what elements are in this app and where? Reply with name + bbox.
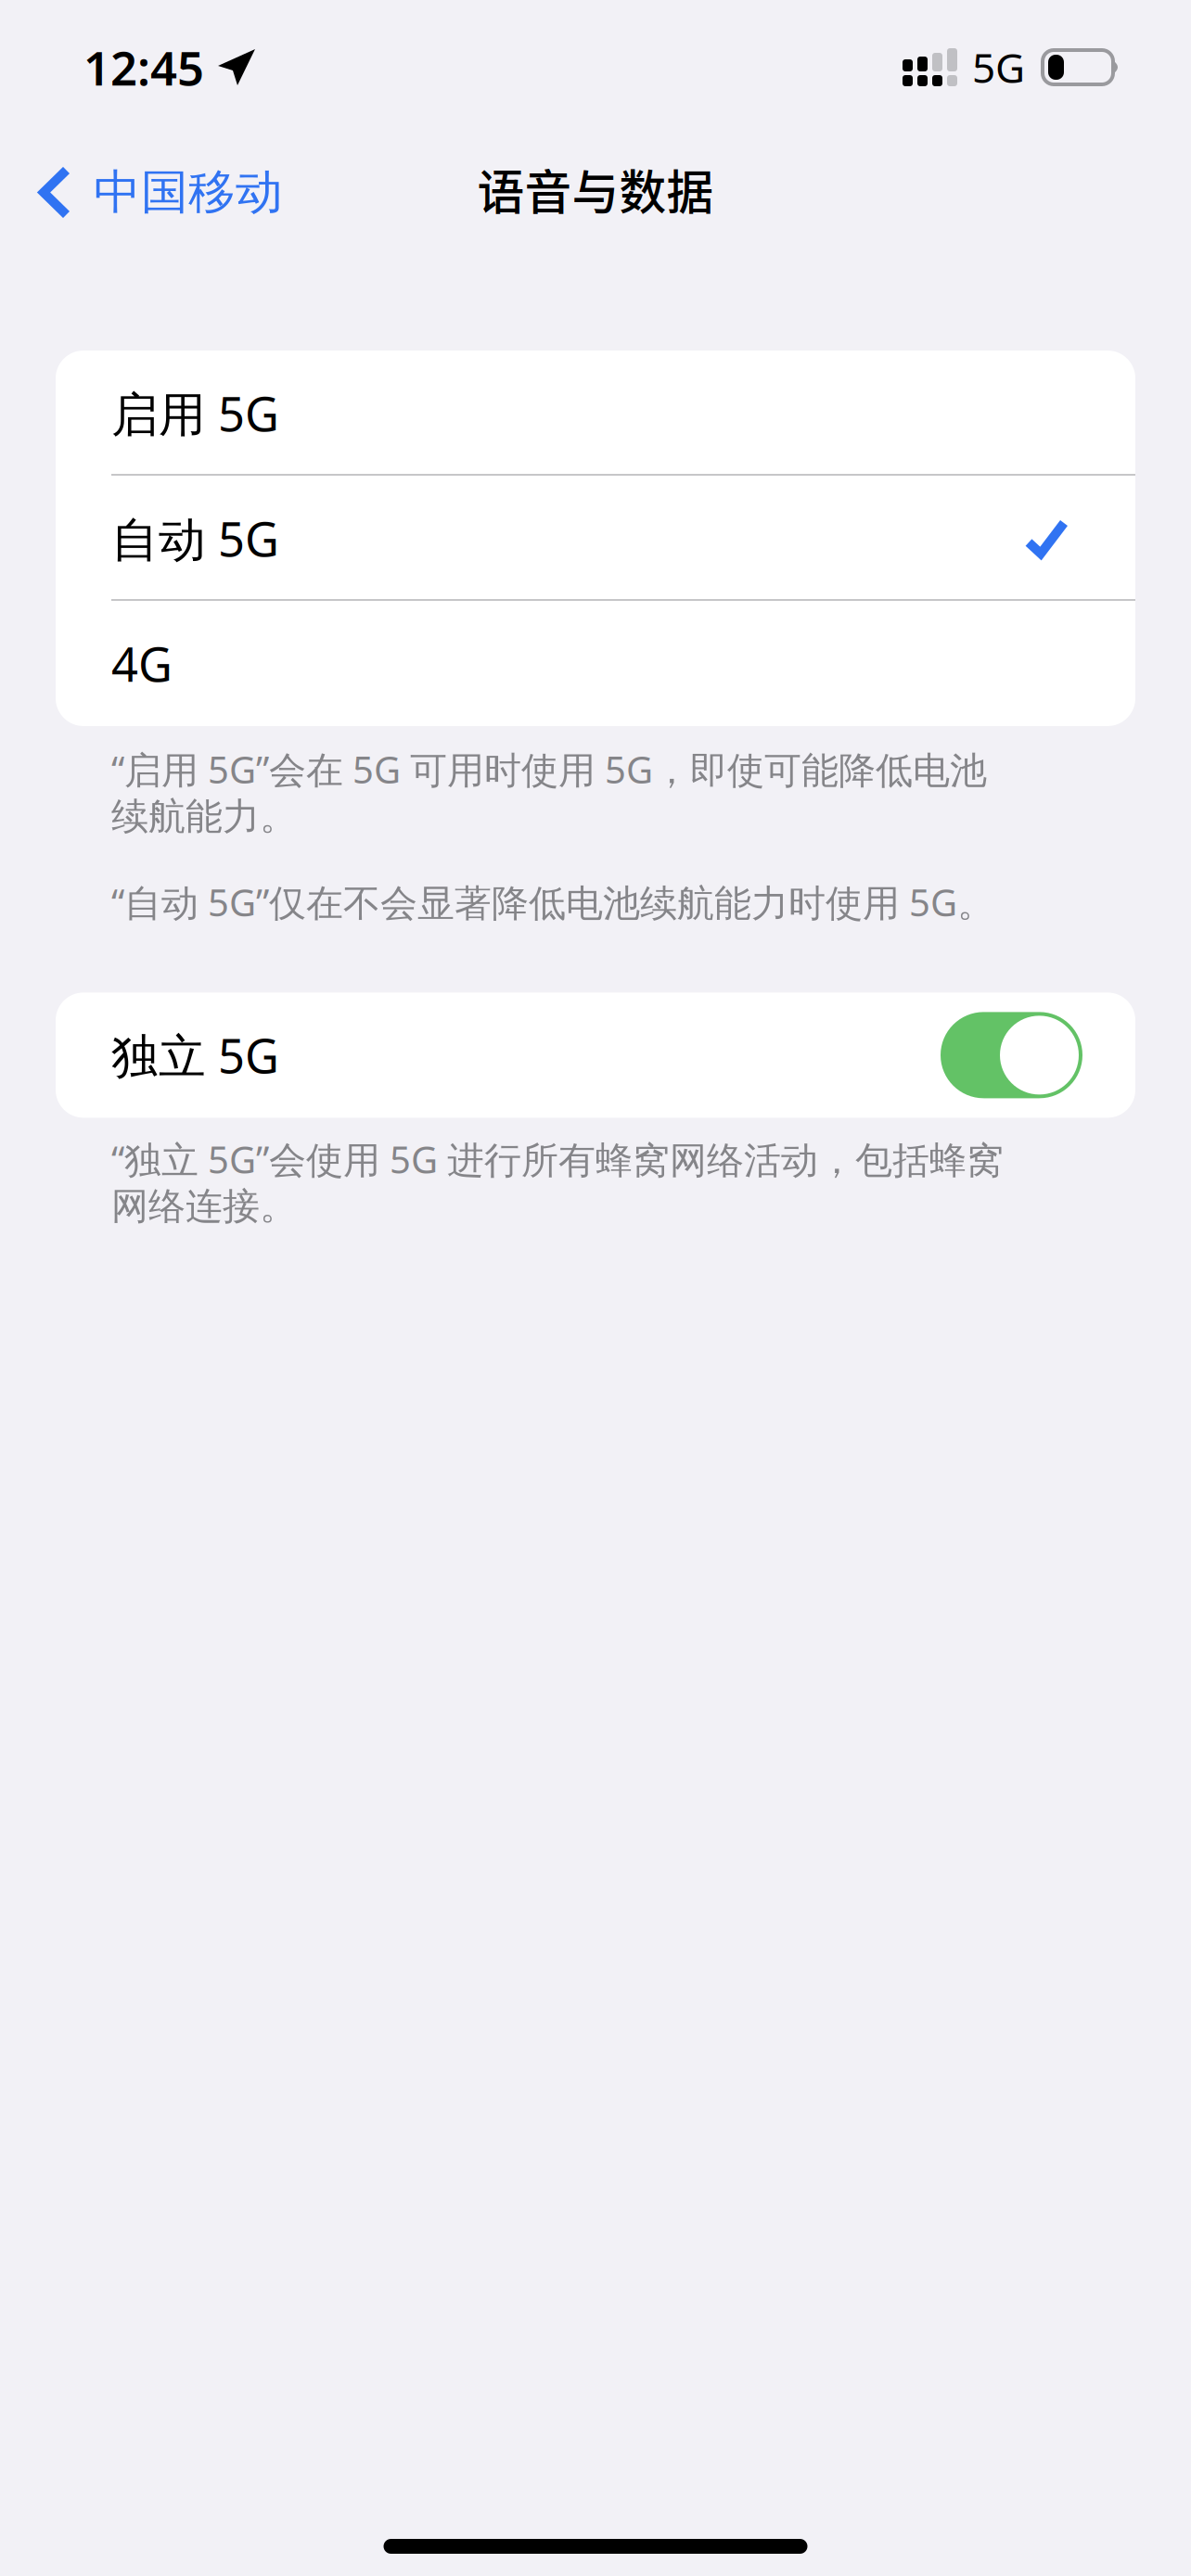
staticText: 启用 5G xyxy=(111,382,279,444)
button[interactable]: 启用 5G xyxy=(56,351,1135,476)
staticText: “启用 5G”会在 5G 可用时使用 5G，即使可能降低电池续航能力。 xyxy=(111,745,987,839)
button[interactable]: 自动 5G xyxy=(56,476,1135,601)
staticText: 4G xyxy=(111,632,173,695)
staticText: 语音与数据 xyxy=(477,155,714,223)
button[interactable]: 独立 5G xyxy=(56,993,1135,1118)
button[interactable]: 4G xyxy=(56,601,1135,726)
staticText: 5G xyxy=(972,40,1025,94)
staticText: “自动 5G”仅在不会显著降低电池续航能力时使用 5G。 xyxy=(111,877,994,927)
button[interactable]: 返回 中国移动 xyxy=(0,141,283,237)
staticText: 中国移动 xyxy=(94,164,283,221)
staticText: “独立 5G”会使用 5G 进行所有蜂窝网络活动，包括蜂窝网络连接。 xyxy=(111,1134,1004,1229)
staticText: 独立 5G xyxy=(111,1024,279,1086)
staticText: 12:45 xyxy=(83,36,204,98)
staticText: 自动 5G xyxy=(111,507,279,570)
